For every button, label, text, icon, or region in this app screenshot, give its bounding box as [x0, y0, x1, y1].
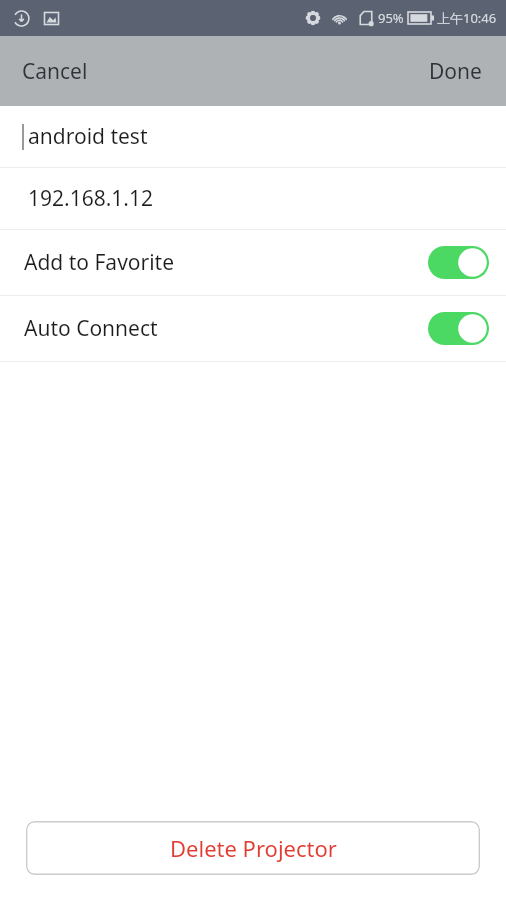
- staticText: Add to Favorite: [24, 248, 175, 277]
- button[interactable]: Auto Connect: [0, 296, 506, 361]
- staticText: Auto Connect: [24, 314, 158, 343]
- button[interactable]: android test: [0, 106, 506, 167]
- staticText: 上午10:46: [437, 9, 497, 27]
- staticText: 192.168.1.12: [28, 184, 153, 213]
- staticText: Done: [429, 57, 482, 86]
- other: Download: [13, 10, 30, 27]
- staticText: 95%: [378, 9, 404, 27]
- button[interactable]: Cancel: [0, 36, 110, 106]
- button[interactable]: Add to Favorite: [0, 230, 506, 295]
- button[interactable]: 192.168.1.12: [0, 168, 506, 229]
- button[interactable]: Done: [405, 36, 506, 106]
- other: Screenshot: [43, 10, 60, 27]
- button[interactable]: Delete Projector: [26, 821, 480, 875]
- staticText: Delete Projector: [170, 833, 337, 863]
- button[interactable]: Toggle: [428, 246, 489, 279]
- button[interactable]: Toggle: [428, 312, 489, 345]
- staticText: Cancel: [22, 57, 88, 86]
- staticText: android test: [28, 122, 148, 151]
